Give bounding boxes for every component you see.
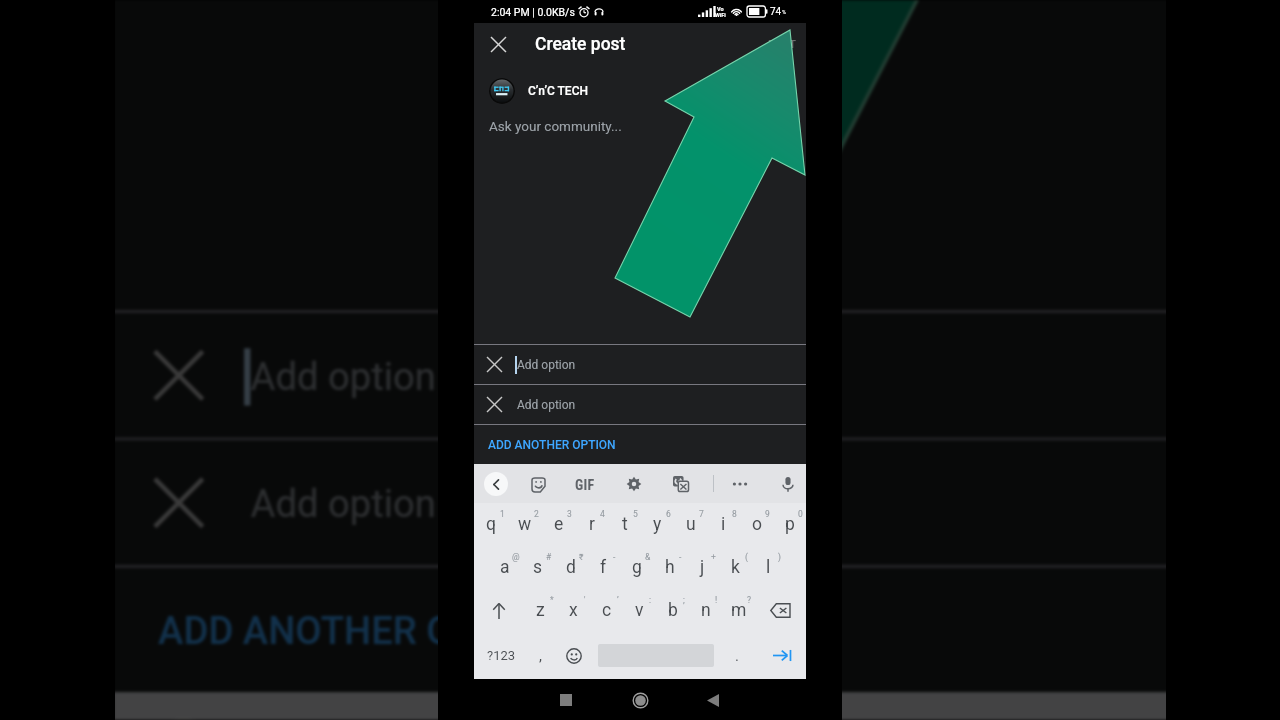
button[interactable]: Close (479, 25, 517, 63)
staticText: , (539, 647, 542, 665)
staticText: w (518, 514, 532, 535)
button[interactable]: Remove option (474, 345, 806, 384)
staticText: 5 (633, 509, 638, 519)
button[interactable]: i (707, 503, 740, 546)
button[interactable]: d (554, 546, 587, 589)
button[interactable]: v (623, 589, 656, 632)
button[interactable]: z (524, 589, 557, 632)
staticText: 2:04 PM | 0.0KB/s (491, 6, 575, 18)
button[interactable]: t (608, 503, 641, 546)
button[interactable]: ?123 (474, 632, 528, 679)
staticText: c (602, 600, 612, 621)
staticText: POST (768, 38, 796, 51)
staticText: : (649, 595, 652, 605)
button[interactable]: f (587, 546, 620, 589)
staticText: C’n’C TECH (528, 84, 588, 98)
staticText: s (533, 557, 543, 578)
button[interactable]: m (722, 589, 755, 632)
button[interactable]: ADD ANOTHER OPTION (113, 568, 1171, 692)
button[interactable]: l (752, 546, 785, 589)
button[interactable]: g (620, 546, 653, 589)
button[interactable]: b (656, 589, 689, 632)
button[interactable]: Remove option (113, 441, 1171, 565)
button[interactable]: Back (145, 718, 222, 720)
staticText: * (550, 595, 554, 605)
staticText: @ (512, 552, 520, 562)
button[interactable]: c (590, 589, 623, 632)
button[interactable]: , (528, 632, 552, 679)
button[interactable]: h (653, 546, 686, 589)
button[interactable]: More options (919, 714, 1002, 720)
button[interactable]: a (488, 546, 521, 589)
button[interactable]: Home (620, 680, 660, 720)
button[interactable]: ADD ANOTHER OPTION (474, 425, 806, 464)
button[interactable]: . (716, 632, 758, 679)
button[interactable]: POST (768, 25, 796, 63)
button[interactable]: o (740, 503, 773, 546)
button[interactable]: x (557, 589, 590, 632)
button[interactable]: Next (758, 632, 806, 679)
button[interactable]: u (674, 503, 707, 546)
staticText: ₹ (579, 552, 584, 562)
staticText: ; (683, 595, 685, 605)
staticText: k (731, 557, 740, 578)
staticText: a (500, 557, 510, 578)
button[interactable]: Stickers (276, 714, 359, 720)
button[interactable]: Backspace (755, 589, 806, 632)
button[interactable]: Stickers (525, 471, 551, 497)
staticText: ADD ANOTHER OPTION (158, 609, 566, 654)
button[interactable]: r (575, 503, 608, 546)
button[interactable]: q (474, 503, 508, 546)
staticText: l (766, 557, 771, 578)
staticText: z (536, 600, 545, 621)
staticText: ) (778, 552, 781, 562)
button[interactable]: s (521, 546, 554, 589)
button[interactable]: Remove option (113, 313, 1171, 437)
button[interactable]: y (641, 503, 674, 546)
staticText: h (665, 557, 675, 578)
staticText: & (645, 552, 651, 562)
button[interactable]: Back (693, 680, 733, 720)
other: Remove option (474, 385, 514, 424)
staticText: 0 (798, 509, 803, 519)
staticText: b (668, 600, 678, 621)
button[interactable]: k (719, 546, 752, 589)
button[interactable]: Settings (621, 471, 647, 497)
button[interactable]: n (689, 589, 722, 632)
button[interactable]: e (542, 503, 575, 546)
button[interactable]: p (773, 503, 806, 546)
staticText: ' (584, 595, 586, 605)
button[interactable]: Recents (546, 680, 586, 720)
staticText: p (785, 514, 795, 535)
button[interactable]: Translate (668, 471, 694, 497)
staticText: 8 (732, 509, 737, 519)
staticText: % (782, 9, 787, 15)
staticText: e (554, 514, 564, 535)
staticText: 6 (666, 509, 671, 519)
staticText: x (569, 600, 578, 621)
staticText: ?123 (487, 648, 516, 663)
button[interactable]: Voice input (1072, 714, 1155, 720)
button[interactable]: More options (727, 471, 753, 497)
button[interactable]: w (508, 503, 542, 546)
staticText: n (701, 600, 711, 621)
button[interactable]: Shift (474, 589, 524, 632)
staticText: ADD ANOTHER OPTION (488, 438, 616, 452)
button[interactable]: j (686, 546, 719, 589)
staticText: r (589, 514, 595, 535)
button[interactable]: Channel avatar (489, 78, 515, 104)
staticText: Ask your community... (489, 118, 622, 134)
staticText: Add option (517, 398, 576, 412)
button[interactable]: Remove option (474, 385, 806, 424)
staticText: t (622, 514, 628, 535)
staticText: Add option (517, 358, 576, 372)
button[interactable]: Voice input (775, 471, 801, 497)
button[interactable]: Back (484, 472, 508, 496)
staticText: 9 (765, 509, 770, 519)
staticText: Vo (717, 6, 724, 12)
button[interactable]: Emoji (552, 632, 596, 679)
button[interactable]: GIF (575, 477, 595, 493)
